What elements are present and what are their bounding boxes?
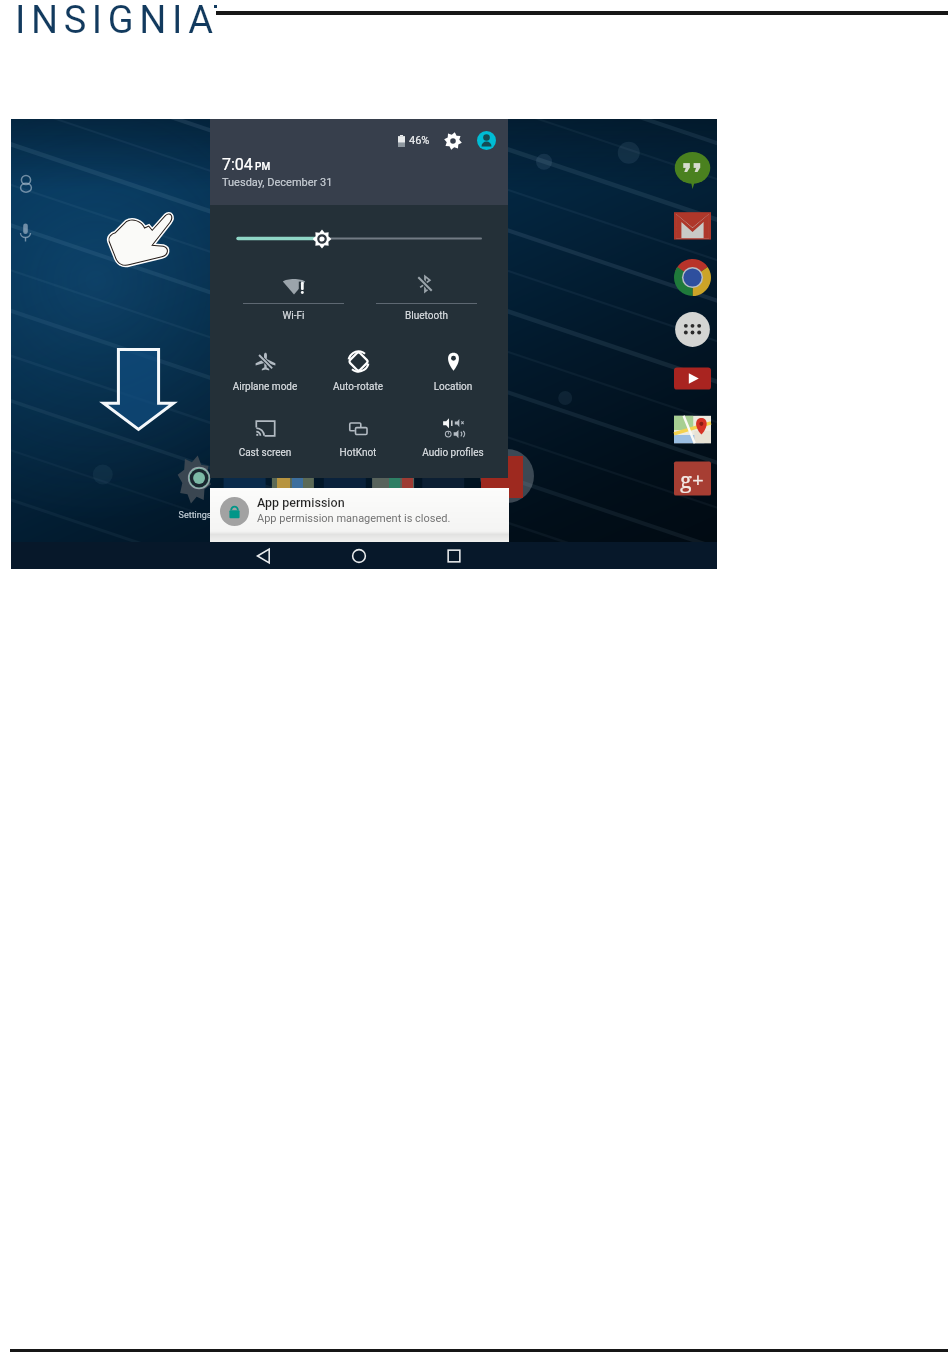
- staticText: Bluetooth: [376, 310, 477, 322]
- staticText: HotKnot: [313, 447, 403, 459]
- button[interactable]: Google Plus: [674, 460, 711, 497]
- staticText: PM: [255, 161, 271, 173]
- button[interactable]: Auto-rotate: [313, 347, 403, 389]
- button[interactable]: Audio profiles: [408, 414, 498, 455]
- button[interactable]: [413, 272, 437, 296]
- staticText: Airplane mode: [220, 381, 310, 393]
- button[interactable]: User profile: [477, 131, 496, 150]
- button[interactable]: Home: [346, 543, 372, 569]
- button[interactable]: Settings: [444, 132, 462, 150]
- button[interactable]: Maps: [674, 411, 711, 448]
- button[interactable]: Gmail: [674, 207, 711, 244]
- staticText: Tuesday, December 31: [222, 176, 333, 189]
- button[interactable]: Chrome: [674, 259, 711, 296]
- staticText: Audio profiles: [408, 447, 498, 459]
- button[interactable]: Location: [408, 347, 498, 389]
- button[interactable]: All apps: [674, 311, 711, 348]
- staticText: App permission: [257, 495, 345, 510]
- button[interactable]: [282, 272, 306, 296]
- button[interactable]: Airplane mode: [220, 347, 310, 389]
- staticText: 46%: [409, 134, 430, 147]
- staticText: Location: [408, 381, 498, 393]
- staticText: Settings: [169, 510, 221, 521]
- button[interactable]: Cast screen: [220, 414, 310, 455]
- button[interactable]: YouTube: [674, 360, 711, 397]
- staticText: g+: [680, 464, 705, 494]
- button[interactable]: HotKnot: [313, 414, 403, 455]
- staticText: Wi-Fi: [243, 310, 344, 322]
- button[interactable]: Recent apps: [441, 543, 467, 569]
- staticText: Auto-rotate: [313, 381, 403, 393]
- staticText: Cast screen: [220, 447, 310, 459]
- staticText: App permission management is closed.: [257, 512, 451, 525]
- staticText: INSIGNIA: [15, 0, 219, 43]
- button[interactable]: Hangouts: [674, 152, 711, 189]
- staticText: 7:04: [222, 155, 253, 174]
- button[interactable]: App permission: [210, 488, 509, 542]
- button[interactable]: Back: [251, 543, 277, 569]
